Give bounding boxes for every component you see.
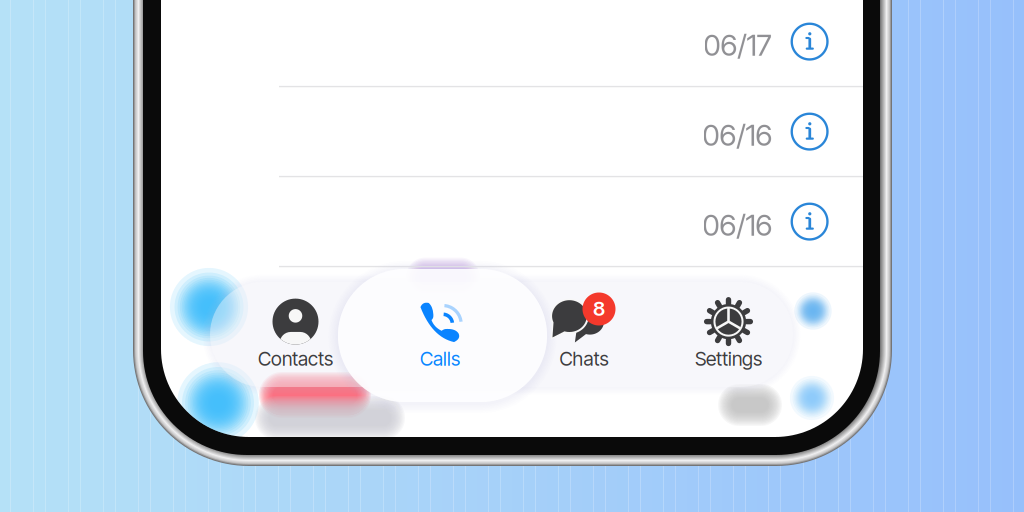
button[interactable]: Calls [375, 267, 505, 377]
staticText: Contacts [258, 347, 333, 370]
button[interactable]: Chats [519, 267, 649, 377]
staticText: Chats [559, 347, 608, 370]
button[interactable]: 06/16 [161, 90, 863, 180]
staticText: Calls [420, 347, 460, 370]
staticText: 8 [593, 296, 605, 321]
button[interactable]: Settings [663, 267, 793, 377]
button[interactable]: More info [782, 14, 838, 70]
button[interactable]: 06/16 [161, 180, 863, 270]
staticText: 06/17 [703, 27, 771, 63]
button[interactable]: More info [782, 104, 838, 160]
button[interactable]: More info [782, 194, 838, 250]
button[interactable]: Contacts [230, 267, 360, 377]
staticText: 06/16 [702, 117, 772, 153]
staticText: 06/16 [702, 207, 772, 243]
staticText: Settings [695, 347, 762, 370]
button[interactable]: 06/17 [161, 0, 863, 90]
